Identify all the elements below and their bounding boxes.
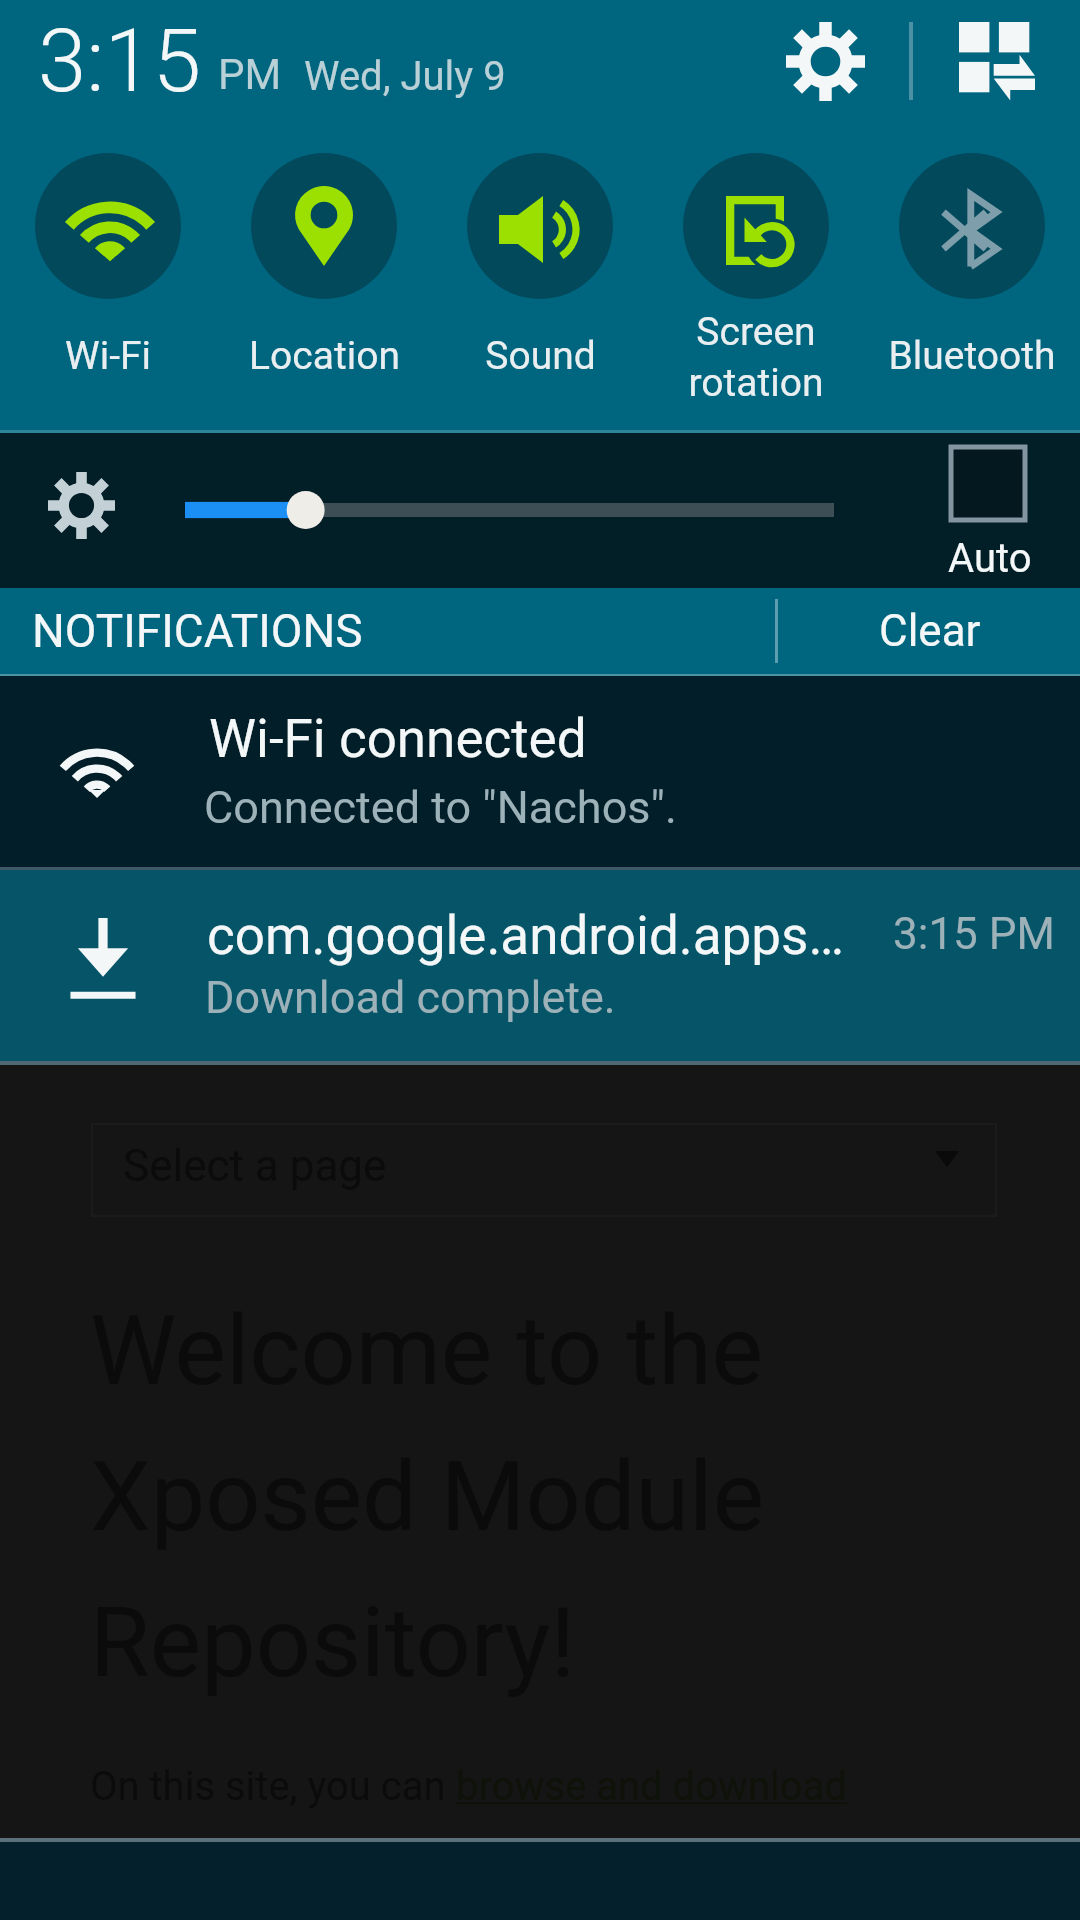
button[interactable]: Auto <box>951 447 1051 572</box>
staticText: com.google.android.apps… <box>207 905 844 967</box>
button[interactable]: Sound <box>432 153 648 379</box>
staticText: 3:15 PM <box>893 908 1055 960</box>
staticText: Bluetooth <box>888 333 1056 379</box>
button[interactable]: Brightness settings <box>48 472 115 539</box>
staticText: On this site, you can <box>90 1763 456 1810</box>
staticText: Wed, July 9 <box>304 53 506 100</box>
staticText: Location <box>249 333 400 379</box>
staticText: Welcome to the Xposed Module Repository! <box>90 1294 765 1699</box>
staticText: Select a page <box>123 1140 387 1192</box>
staticText: NOTIFICATIONS <box>32 604 363 658</box>
button[interactable]: Settings <box>765 1 885 121</box>
button[interactable]: com.google.android.apps… <box>0 870 1080 1061</box>
staticText: PM <box>218 50 282 99</box>
staticText: Connected to "Nachos". <box>204 781 677 834</box>
staticText: Clear <box>879 605 981 657</box>
staticText: Screen rotation <box>688 309 824 405</box>
staticText: Wi-Fi connected <box>209 708 587 770</box>
staticText: Wi-Fi <box>65 333 151 379</box>
staticText: browse and download <box>456 1763 847 1810</box>
staticText: Auto <box>948 535 1032 582</box>
button[interactable]: Wi-Fi connected <box>0 676 1080 867</box>
button[interactable]: Brightness <box>185 490 834 530</box>
button[interactable]: Wi-Fi <box>0 153 216 379</box>
staticText: Download complete. <box>205 971 616 1024</box>
button[interactable]: Clear <box>780 588 1080 674</box>
staticText: Sound <box>485 333 596 379</box>
staticText: 3:15 <box>38 10 202 112</box>
button[interactable]: Quick settings <box>937 0 1057 118</box>
button[interactable]: Location <box>216 153 432 379</box>
button[interactable]: Bluetooth <box>864 153 1080 379</box>
button[interactable]: Screen rotation <box>648 153 864 405</box>
